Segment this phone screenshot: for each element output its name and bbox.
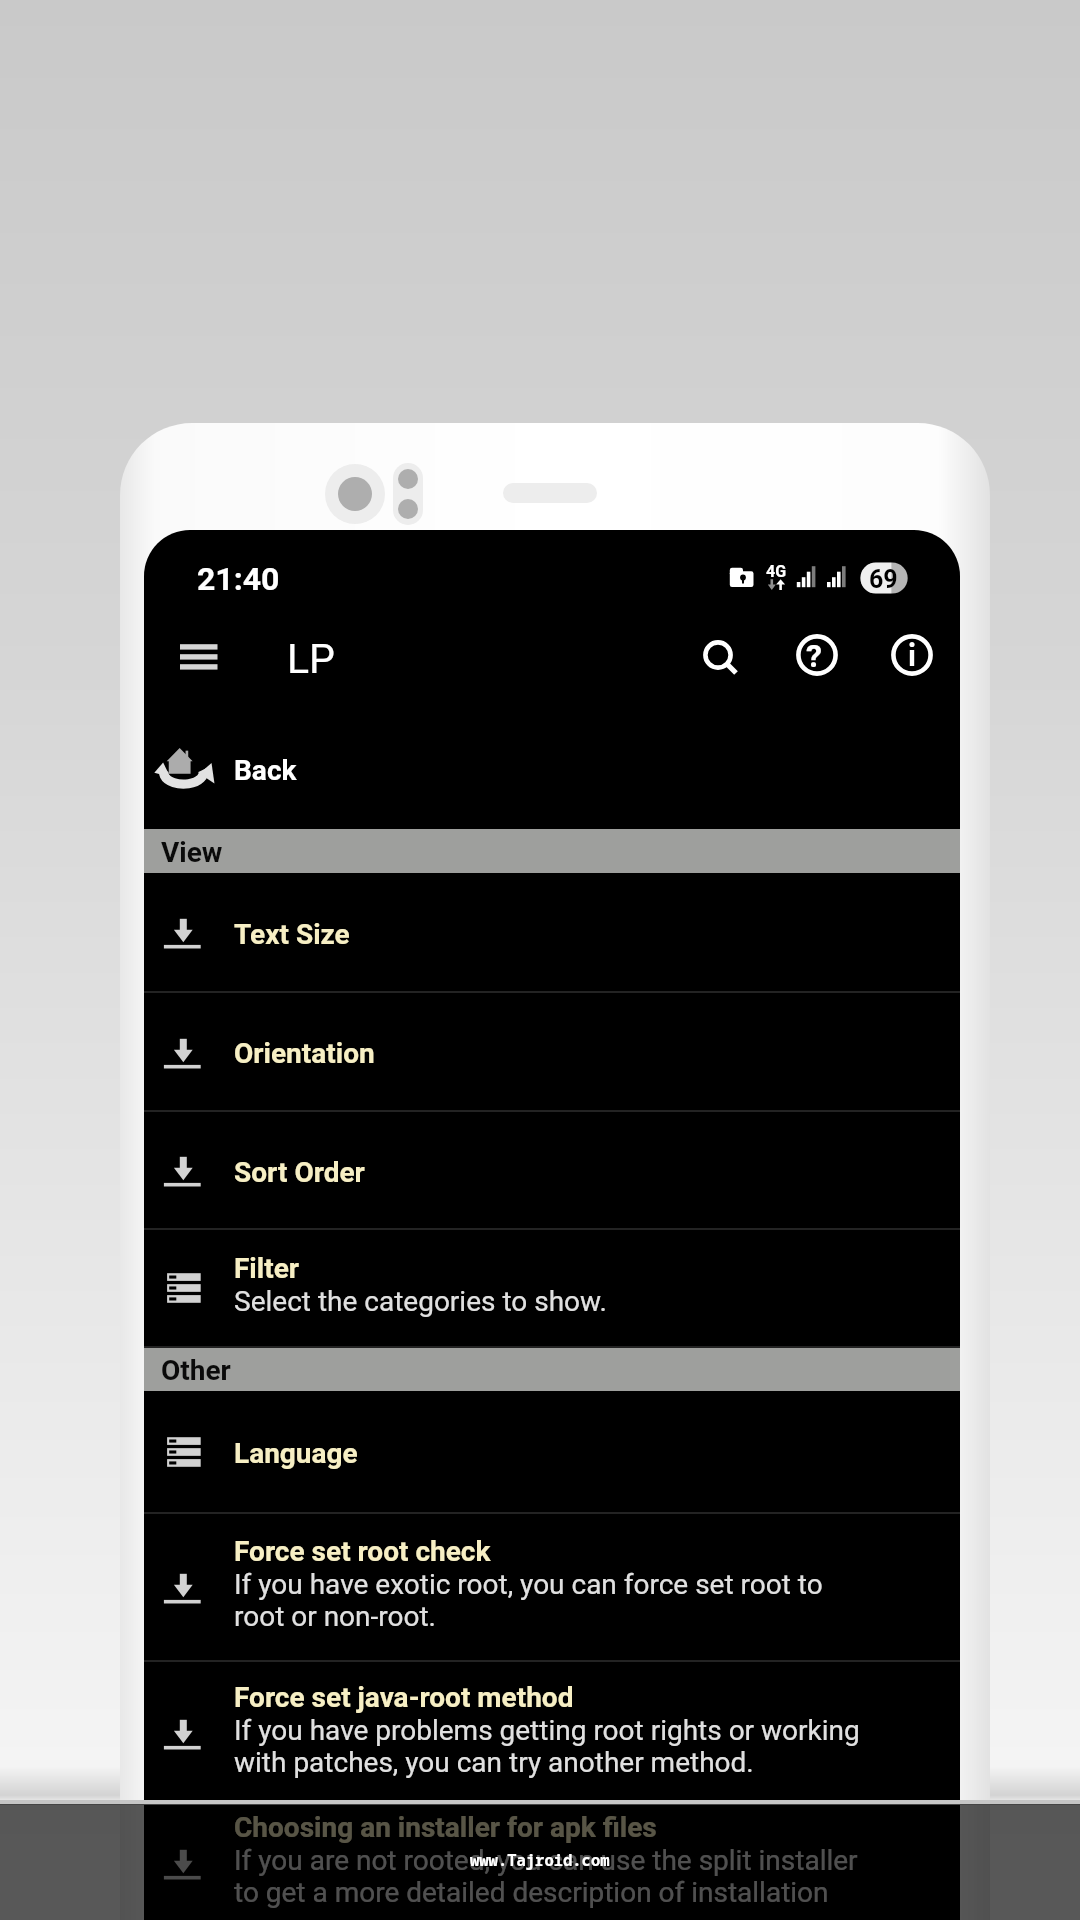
staticText: Other: [161, 1354, 231, 1387]
staticText: LP: [287, 635, 335, 683]
button[interactable]: Choosing an installer for apk files: [144, 1805, 960, 1920]
button[interactable]: Force set java-root method: [144, 1662, 960, 1805]
button[interactable]: Sort Order: [144, 1112, 960, 1230]
staticText: Language: [234, 1437, 358, 1470]
staticText: Orientation: [234, 1037, 375, 1070]
button[interactable]: Back: [144, 700, 960, 829]
staticText: ?: [806, 637, 822, 675]
staticText: Text Size: [234, 918, 350, 951]
button[interactable]: Language: [144, 1391, 960, 1514]
button[interactable]: Search: [684, 621, 752, 689]
button[interactable]: Orientation: [144, 993, 960, 1112]
button[interactable]: Text Size: [144, 873, 960, 993]
staticText: Sort Order: [234, 1156, 365, 1189]
staticText: Choosing an installer for apk files: [234, 1811, 657, 1844]
staticText: Back: [234, 754, 297, 787]
staticText: 69: [869, 565, 898, 594]
staticText: If you are not rooted, you can use the s…: [234, 1844, 866, 1909]
staticText: View: [161, 836, 223, 869]
button[interactable]: Help: [783, 621, 851, 689]
button[interactable]: Filter: [144, 1230, 960, 1348]
staticText: 21:40: [197, 560, 280, 598]
button[interactable]: Open navigation menu: [152, 616, 230, 694]
staticText: If you have problems getting root rights…: [234, 1714, 866, 1779]
button[interactable]: Info: [878, 621, 946, 689]
staticText: Force set java-root method: [234, 1681, 574, 1714]
staticText: 4G: [766, 562, 787, 581]
staticText: Select the categories to show.: [234, 1285, 866, 1318]
staticText: www.Tajroid.com: [470, 1849, 610, 1870]
button[interactable]: Force set root check: [144, 1514, 960, 1662]
staticText: If you have exotic root, you can force s…: [234, 1568, 866, 1633]
staticText: Force set root check: [234, 1535, 491, 1568]
staticText: Filter: [234, 1252, 300, 1285]
